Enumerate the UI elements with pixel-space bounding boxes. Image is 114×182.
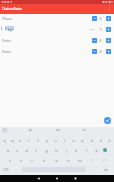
staticText: x — [20, 158, 22, 163]
button[interactable]: t — [33, 136, 42, 145]
button[interactable]: Increase — [106, 38, 111, 43]
staticText: å — [91, 138, 93, 143]
button[interactable]: g — [41, 146, 51, 155]
staticText: s — [16, 148, 18, 153]
button[interactable]: Increase — [106, 16, 111, 21]
button[interactable]: z — [4, 156, 15, 165]
staticText: Pituus — [2, 16, 12, 21]
staticText: l — [86, 148, 87, 153]
button[interactable]: ja — [16, 127, 44, 133]
staticText: Paino — [2, 49, 11, 54]
button[interactable]: ä — [96, 136, 105, 145]
staticText: n — [67, 158, 70, 163]
staticText: e — [19, 138, 21, 143]
button[interactable]: a — [3, 146, 12, 155]
staticText: m — [78, 158, 82, 163]
staticText: ei — [83, 128, 86, 132]
button[interactable]: ö — [105, 136, 114, 145]
button[interactable]: f — [31, 146, 41, 155]
button[interactable]: Increase — [106, 27, 111, 32]
button[interactable]: . — [88, 167, 94, 172]
staticText: h — [55, 148, 58, 153]
button[interactable]: l — [81, 146, 91, 155]
button[interactable]: o — [69, 136, 78, 145]
button[interactable]: w — [8, 136, 16, 145]
button[interactable]: Decrease — [92, 16, 97, 21]
button[interactable]: r — [24, 136, 33, 145]
staticText: rivi — [104, 168, 108, 172]
staticText: ja — [29, 128, 32, 132]
button[interactable]: p — [78, 136, 87, 145]
staticText: y — [46, 138, 48, 143]
staticText: q — [3, 138, 6, 143]
staticText: ä — [100, 138, 102, 143]
staticText: k — [75, 148, 77, 153]
button[interactable]: i — [60, 136, 69, 145]
button[interactable]: Save — [104, 117, 111, 124]
staticText: b — [55, 158, 58, 163]
button[interactable]: v — [38, 156, 50, 165]
button[interactable]: Decrease — [92, 38, 97, 43]
button[interactable]: Search — [103, 148, 107, 152]
staticText: i — [64, 138, 65, 143]
staticText: p — [81, 138, 84, 143]
button[interactable]: ä — [101, 146, 111, 155]
staticText: f — [35, 148, 37, 153]
button[interactable]: ! — [86, 156, 98, 165]
button[interactable]: Decrease — [92, 49, 97, 54]
staticText: g — [45, 148, 48, 153]
button[interactable]: u — [51, 136, 60, 145]
staticText: w — [11, 138, 14, 143]
staticText: ö — [95, 148, 98, 153]
staticText: c — [31, 158, 33, 163]
staticText: u — [54, 138, 57, 143]
button[interactable]: Paino — [0, 47, 114, 58]
button[interactable]: c — [26, 156, 38, 165]
button[interactable]: å — [87, 136, 96, 145]
button[interactable]: d — [21, 146, 31, 155]
button[interactable]: b — [50, 156, 62, 165]
button[interactable]: s — [12, 146, 21, 155]
button[interactable]: n — [62, 156, 74, 165]
button[interactable]: 1 kpl — [0, 25, 114, 36]
button[interactable]: More options — [105, 4, 114, 14]
staticText: d — [25, 148, 28, 153]
button[interactable]: x — [15, 156, 26, 165]
button[interactable]: Pituus — [0, 14, 114, 25]
button[interactable]: ö — [91, 146, 101, 155]
staticText: z — [9, 158, 11, 163]
button[interactable]: h — [51, 146, 61, 155]
button[interactable]: k — [71, 146, 81, 155]
staticText: r — [28, 138, 30, 143]
button[interactable]: q — [0, 136, 8, 145]
button[interactable]: Enter — [99, 167, 112, 172]
staticText: j — [66, 148, 67, 153]
staticText: ! — [92, 158, 93, 163]
button[interactable]: Paino — [0, 36, 114, 47]
staticText: o — [72, 138, 75, 143]
button[interactable]: ?123 — [1, 167, 11, 172]
button[interactable]: m — [74, 156, 86, 165]
staticText: Paino — [2, 38, 11, 43]
button[interactable]: j — [61, 146, 71, 155]
button[interactable]: e — [16, 136, 24, 145]
button[interactable]: ei — [71, 127, 98, 133]
staticText: ä — [105, 148, 107, 153]
button[interactable]: y — [42, 136, 51, 145]
button[interactable]: ? — [98, 156, 110, 165]
staticText: Ostoslista — [2, 6, 22, 12]
staticText: ? — [103, 158, 105, 163]
staticText: ö — [108, 138, 111, 143]
staticText: t — [37, 138, 39, 143]
staticText: 1 kpl — [5, 27, 13, 32]
button[interactable]: Increase — [106, 49, 111, 54]
button[interactable]: on — [44, 127, 71, 133]
staticText: on — [56, 128, 60, 132]
staticText: a — [7, 148, 9, 153]
staticText: . — [91, 168, 92, 172]
staticText: v — [43, 158, 45, 163]
staticText: ?123 — [3, 168, 9, 172]
